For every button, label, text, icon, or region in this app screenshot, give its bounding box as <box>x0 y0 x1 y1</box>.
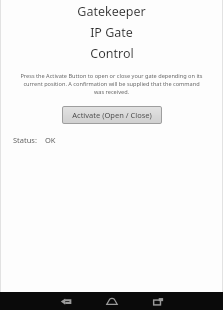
staticText: Gatekeeper <box>77 3 146 20</box>
button[interactable]: Home <box>97 292 127 310</box>
button[interactable]: Activate (Open / Close) <box>62 106 162 124</box>
button[interactable]: Back <box>51 292 81 310</box>
staticText: Control <box>90 45 134 62</box>
button[interactable]: Recent apps <box>143 292 173 310</box>
staticText: OK <box>45 135 56 145</box>
staticText: Press the Activate Button to open or clo… <box>18 72 205 96</box>
staticText: Activate (Open / Close) <box>72 110 152 120</box>
staticText: IP Gate <box>90 24 133 41</box>
staticText: Status: <box>13 135 37 145</box>
